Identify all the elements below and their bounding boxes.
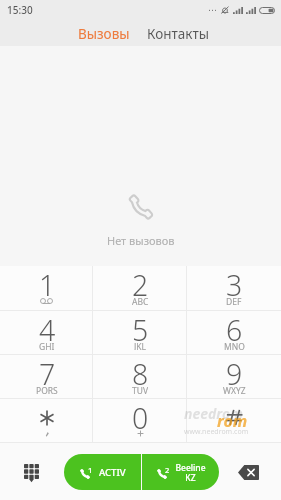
- button[interactable]: 6: [187, 311, 281, 354]
- staticText: ABC: [132, 296, 149, 305]
- button[interactable]: Show keypad: [16, 457, 46, 487]
- button[interactable]: Контакты: [139, 22, 217, 46]
- staticText: needrom: [184, 404, 243, 423]
- staticText: PQRS: [36, 385, 58, 394]
- staticText: 8: [132, 355, 149, 389]
- staticText: 1: [39, 266, 56, 300]
- staticText: 5: [132, 311, 149, 345]
- staticText: DEF: [226, 296, 242, 305]
- staticText: 15:30: [7, 3, 33, 17]
- staticText: 1: [88, 465, 93, 475]
- staticText: www.needrom.com: [184, 427, 249, 437]
- staticText: rom: [217, 410, 248, 432]
- button[interactable]: [187, 399, 281, 442]
- staticText: ⋯: [208, 5, 217, 15]
- staticText: 4: [39, 311, 56, 345]
- staticText: GHI: [39, 341, 55, 350]
- button[interactable]: Delete: [233, 457, 263, 487]
- button[interactable]: 1: [64, 454, 141, 490]
- button[interactable]: 7: [0, 355, 93, 398]
- staticText: 9: [226, 355, 243, 389]
- button[interactable]: 3: [187, 266, 281, 310]
- staticText: Контакты: [147, 25, 209, 43]
- button[interactable]: 8: [93, 355, 187, 398]
- button[interactable]: 0: [93, 399, 187, 442]
- button[interactable]: 2: [93, 266, 187, 310]
- staticText: 7: [39, 355, 56, 389]
- staticText: ACTIV: [99, 466, 126, 479]
- button[interactable]: 4: [0, 311, 93, 354]
- button[interactable]: 5: [93, 311, 187, 354]
- button[interactable]: 2: [142, 454, 219, 490]
- staticText: 6: [226, 311, 243, 345]
- button[interactable]: Вызовы: [70, 22, 138, 46]
- staticText: 2: [165, 465, 170, 475]
- staticText: JKL: [134, 341, 147, 350]
- button[interactable]: 1: [0, 266, 93, 310]
- staticText: Нет вызовов: [107, 233, 175, 248]
- staticText: 0: [132, 399, 149, 433]
- staticText: TUV: [132, 385, 149, 394]
- button[interactable]: 9: [187, 355, 281, 398]
- staticText: MNO: [224, 341, 245, 350]
- staticText: Beeline KZ: [175, 462, 206, 483]
- staticText: Вызовы: [78, 25, 130, 43]
- staticText: 3: [226, 266, 243, 300]
- staticText: 2: [132, 266, 149, 300]
- button[interactable]: [0, 399, 93, 442]
- staticText: WXYZ: [223, 385, 246, 394]
